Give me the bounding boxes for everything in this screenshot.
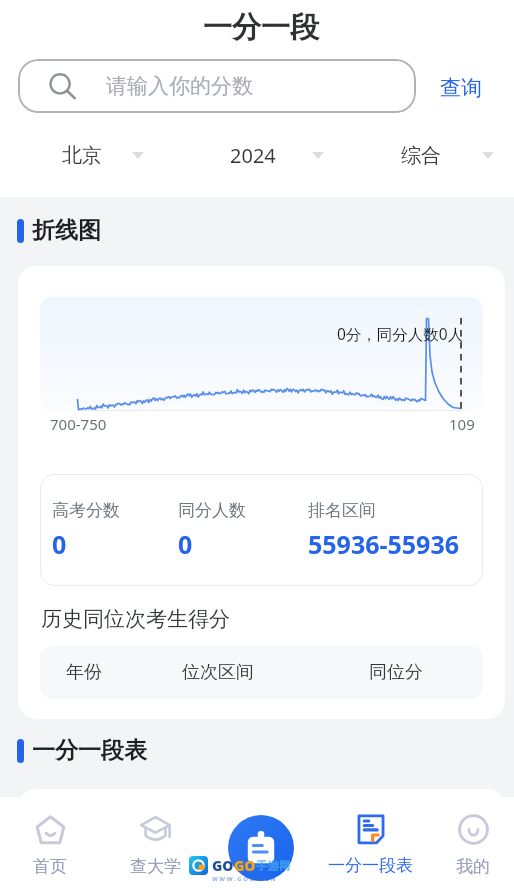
button[interactable]: 志愿填报 [228,815,294,881]
staticText: 查询 [440,75,482,101]
staticText: 同分人数 [178,500,246,521]
staticText: 排名区间 [308,500,376,521]
staticText: GO [234,856,256,875]
staticText: 手游网 [256,859,291,873]
button[interactable]: 首页 [0,797,101,888]
staticText: 一分一段表 [32,736,147,765]
staticText: 0分，同分人数0人 [337,323,464,344]
staticText: 查大学 [130,856,181,877]
button[interactable]: 综合 [343,134,514,176]
button[interactable]: 一分一段表 [319,797,421,888]
staticText: 700-750 [50,414,107,434]
staticText: 北京 [62,143,102,168]
staticText: 一分一段表 [328,855,413,876]
staticText: 历史同位次考生得分 [41,606,230,632]
staticText: 高考分数 [52,500,120,521]
staticText: 折线图 [32,216,101,245]
button[interactable]: 北京 [0,134,172,176]
staticText: 年份 [66,661,102,684]
button[interactable]: 2024 [172,134,343,176]
staticText: 综合 [401,143,441,168]
staticText: 0 [178,527,193,561]
button[interactable]: 查询 [440,73,482,99]
staticText: 109 [449,414,475,434]
staticText: W W W . G O G O . C N [212,875,276,883]
staticText: 位次区间 [182,661,254,684]
staticText: 0 [52,527,67,561]
button[interactable]: 请输入你的分数 [18,59,416,113]
button[interactable]: 查大学 [104,797,206,888]
staticText: 一分一段 [203,9,319,46]
staticText: GO [212,856,234,875]
staticText: 同位分 [369,661,423,684]
staticText: 首页 [33,856,67,877]
staticText: 我的 [456,856,490,877]
staticText: 2024 [230,142,276,169]
staticText: 55936-55936 [308,527,460,561]
staticText: 请输入你的分数 [106,73,253,99]
button[interactable]: 我的 [422,797,514,888]
